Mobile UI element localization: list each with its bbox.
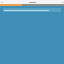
button[interactable]: Navigation menu [0,1,3,4]
button[interactable]: More options [61,1,64,4]
button[interactable] [3,8,61,12]
button[interactable]: Navigation menu [0,0,64,4]
